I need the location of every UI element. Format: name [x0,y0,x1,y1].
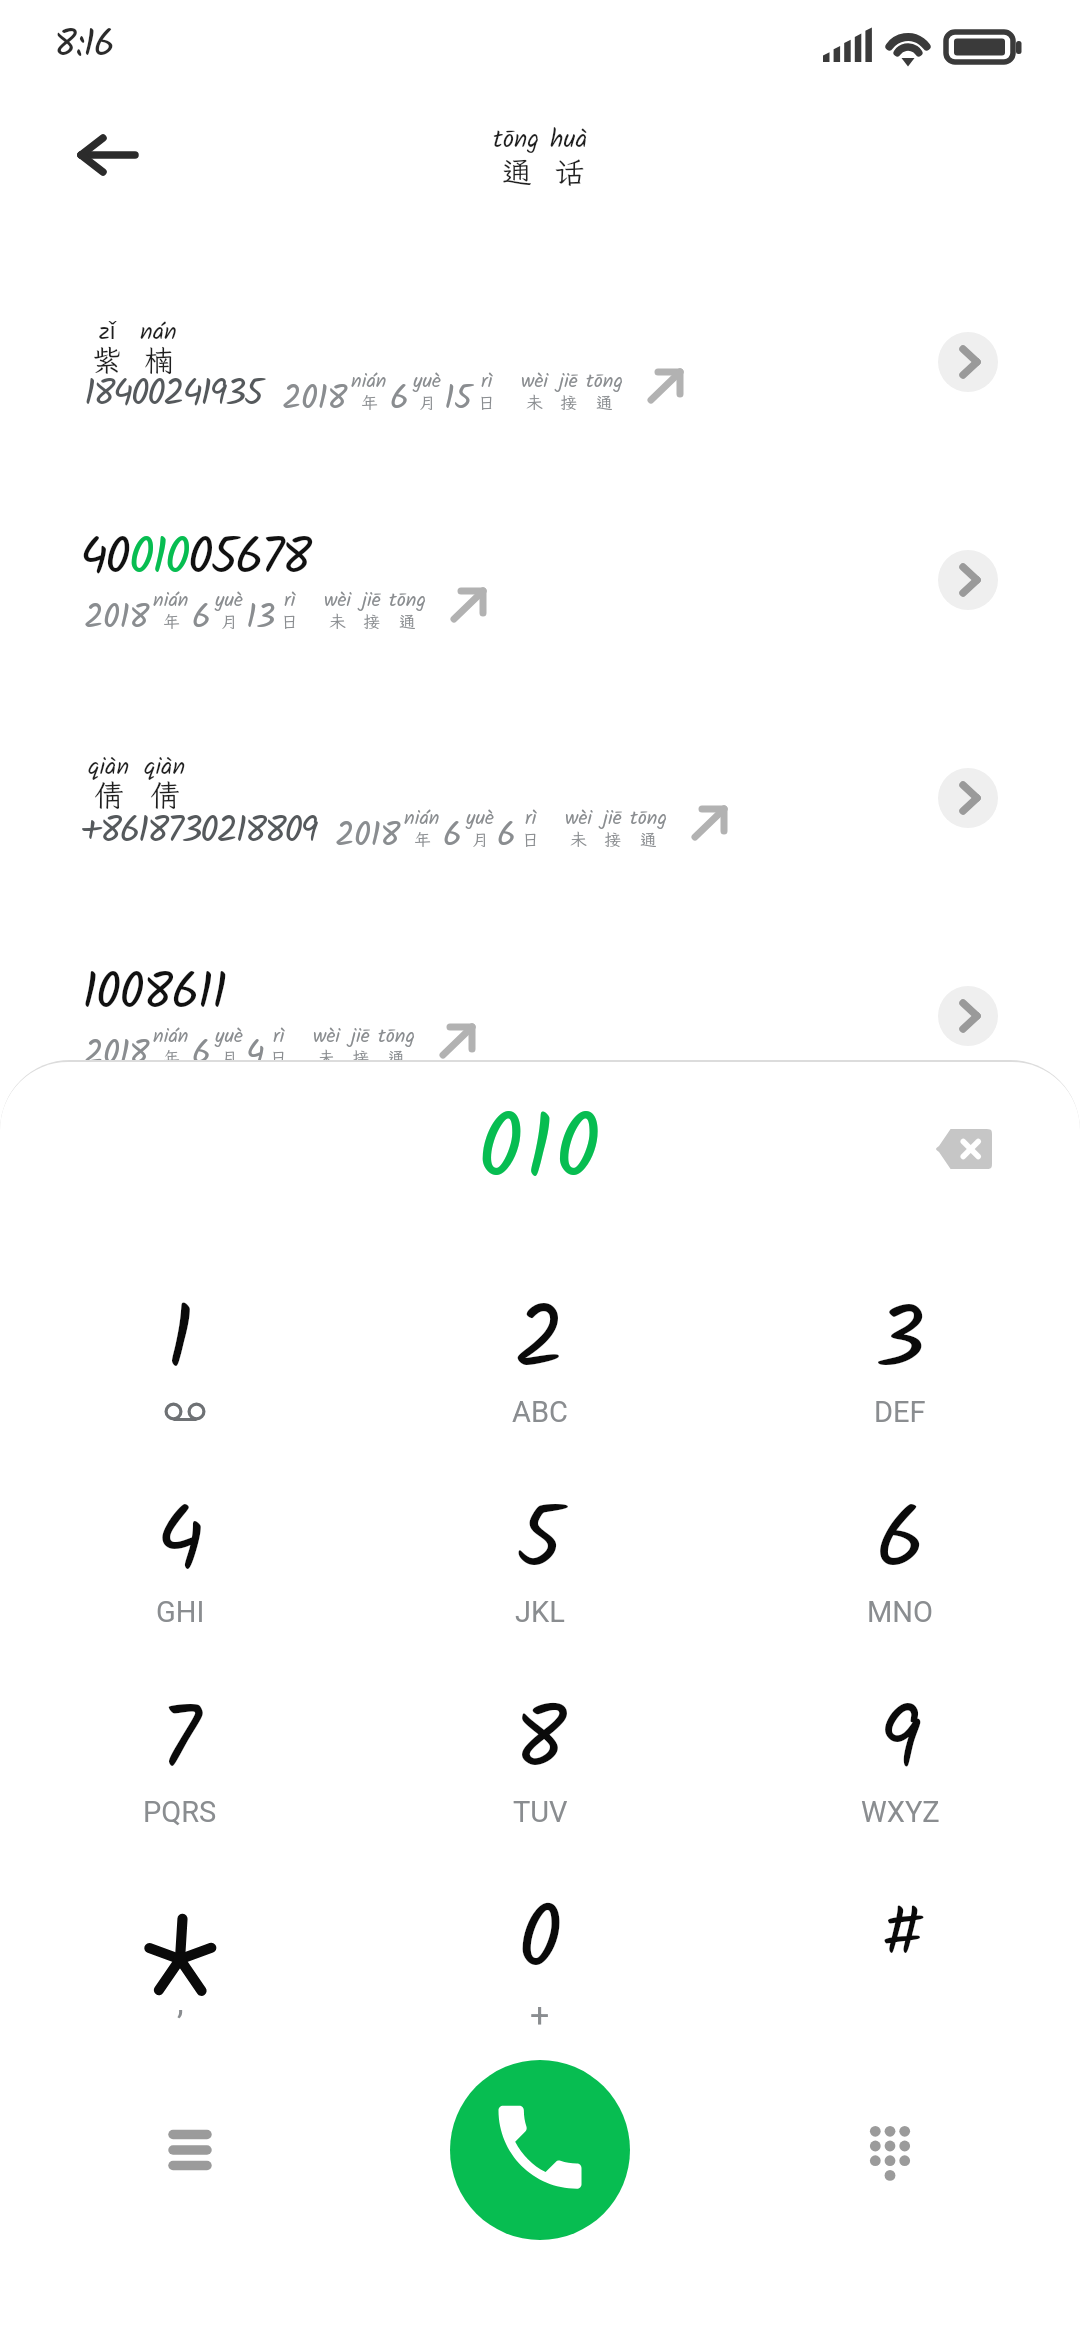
staticText: # [881,1884,919,1986]
staticText: WXYZ [861,1795,940,1829]
staticText: 010 [129,519,188,600]
button[interactable]: 5 [360,1462,720,1662]
staticText: rì [273,1021,285,1053]
staticText: 4 [246,1028,264,1082]
staticText: 6 [192,592,211,646]
staticText: , [177,1982,184,2022]
button[interactable]: 8 [360,1662,720,1862]
staticText: 倩 [150,775,180,815]
button[interactable]: , [0,1862,360,2062]
button[interactable]: 9 [720,1662,1080,1862]
staticText: nán [140,313,177,351]
staticText: 接 [363,610,380,632]
staticText: +8618730218809 [80,803,317,862]
button[interactable]: qiàn [0,751,1080,871]
staticText: jiē [559,366,578,398]
staticText: + [530,1995,550,2035]
button[interactable]: Call details [938,768,998,828]
button[interactable]: 40 [0,519,1080,649]
staticText: 月 [221,1046,238,1068]
staticText: 倩 [94,775,124,815]
staticText: 未 [570,828,587,850]
staticText: GHI [156,1595,205,1629]
staticText: 年 [163,1046,180,1068]
button[interactable]: Back [57,112,149,198]
staticText: 日 [478,391,495,413]
staticText: tōng [493,120,540,160]
staticText: 楠 [144,340,174,380]
button[interactable]: Call details [938,332,998,392]
staticText: 40 [80,519,129,600]
staticText: huà [550,120,588,160]
button[interactable]: 1 [0,1262,360,1462]
button[interactable]: 4 [0,1462,360,1662]
staticText: tōng [389,585,426,617]
staticText: qiàn [144,748,186,786]
button[interactable]: 2 [360,1262,720,1462]
staticText: 2 [514,1273,566,1413]
button[interactable]: 1008611 [0,955,1080,1085]
staticText: 接 [560,391,577,413]
staticText: tōng [586,366,623,398]
button[interactable]: 6 [720,1462,1080,1662]
staticText: 月 [472,828,489,850]
staticText: 日 [270,1046,287,1068]
staticText: 6 [192,1028,211,1082]
button[interactable]: # [720,1862,1080,2062]
staticText: DEF [874,1395,926,1429]
button[interactable]: More options [144,2104,236,2196]
staticText: yuè [413,366,441,398]
staticText: jiē [351,1021,370,1053]
staticText: PQRS [143,1795,217,1829]
staticText: nián [351,366,387,398]
staticText: 8 [514,1673,567,1813]
button[interactable]: 0 [360,1862,720,2062]
staticText: 05678 [188,519,310,600]
staticText: tōng [630,803,667,835]
button[interactable]: Call details [938,550,998,610]
staticText: 通 [502,152,532,192]
staticText: rì [284,585,296,617]
staticText: nián [404,803,440,835]
staticText: 6 [390,373,409,427]
staticText: 15 [444,373,472,427]
staticText: MNO [867,1595,933,1629]
staticText: 5 [516,1473,564,1613]
staticText: 1008611 [82,955,226,1035]
staticText: wèi [521,366,548,398]
button[interactable]: 3 [720,1262,1080,1462]
staticText: yuè [215,1021,243,1053]
staticText: 1 [166,1273,194,1413]
staticText: 通 [399,610,416,632]
staticText: ABC [512,1395,568,1429]
staticText: 通 [596,391,613,413]
staticText: 月 [221,610,238,632]
staticText: 接 [604,828,621,850]
staticText: rì [525,803,537,835]
staticText: 2018 [335,810,400,864]
staticText: 接 [352,1046,369,1068]
staticText: TUV [513,1795,568,1829]
staticText: JKL [515,1595,565,1629]
staticText: 2018 [84,592,149,646]
staticText: 年 [414,828,431,850]
staticText: 0 [518,1873,563,2013]
staticText: 通 [388,1046,405,1068]
staticText: wèi [313,1021,340,1053]
button[interactable]: Keypad [844,2104,936,2196]
staticText: 年 [163,610,180,632]
staticText: 2018 [282,373,347,427]
staticText: rì [481,366,493,398]
staticText: 未 [318,1046,335,1068]
button[interactable]: Call details [938,986,998,1046]
button[interactable]: Delete [916,1107,1012,1191]
staticText: 13 [246,592,275,646]
button[interactable]: zǐ [0,314,1080,434]
staticText: nián [153,585,189,617]
button[interactable]: 7 [0,1662,360,1862]
staticText: 年 [361,391,378,413]
staticText: nián [153,1021,189,1053]
staticText: 日 [281,610,298,632]
staticText: jiē [603,803,622,835]
button[interactable]: Call [450,2060,630,2240]
